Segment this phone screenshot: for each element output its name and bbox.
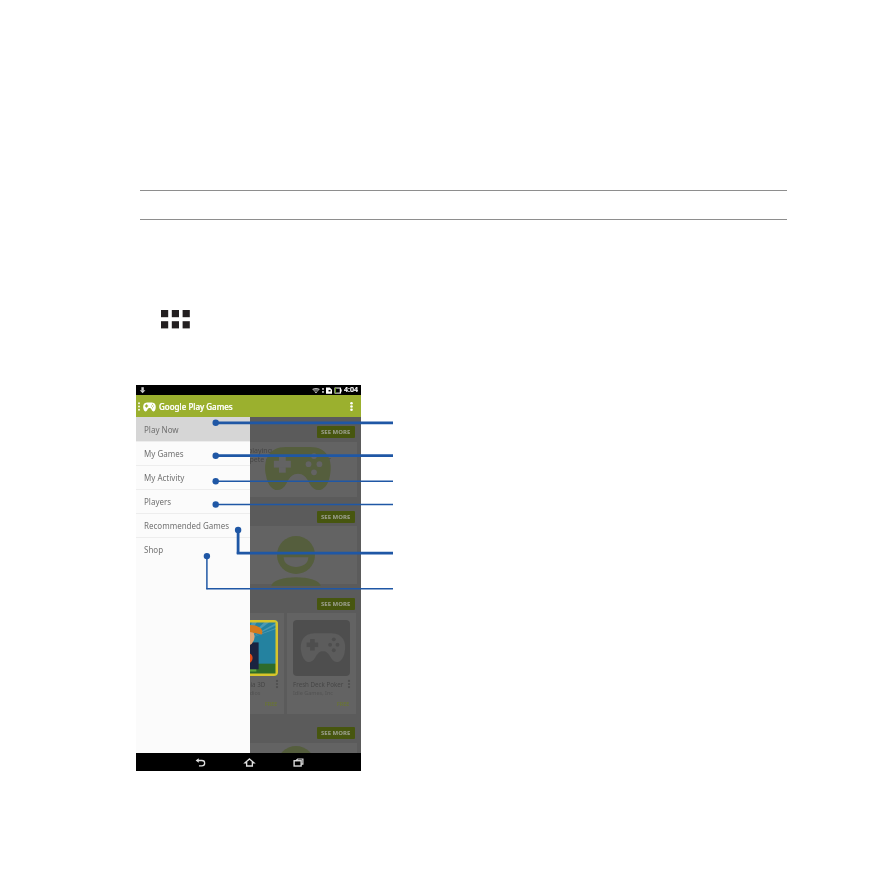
- button[interactable]: Home: [239, 753, 259, 771]
- staticText: Google Play Games: [159, 401, 233, 412]
- button[interactable]: Play Now: [136, 417, 250, 441]
- staticText: Shop: [144, 544, 164, 555]
- staticText: My Games: [144, 448, 184, 459]
- button[interactable]: SEE MORE: [317, 426, 355, 438]
- button[interactable]: Recommended Games: [136, 513, 250, 537]
- staticText: SEE MORE: [321, 600, 351, 608]
- button[interactable]: Shop: [136, 537, 250, 561]
- button[interactable]: SEE MORE: [317, 727, 355, 739]
- button[interactable]: Jewel Mania 3D: [221, 620, 278, 707]
- staticText: FREE: [265, 700, 278, 707]
- staticText: Idle Games, Inc: [293, 689, 333, 696]
- staticText: SEE MORE: [321, 428, 351, 436]
- staticText: You don't have anyone yet. Try: [145, 530, 246, 540]
- button[interactable]: Recents: [288, 753, 308, 771]
- staticText: My Activity: [144, 472, 185, 483]
- button[interactable]: My Games: [136, 441, 250, 465]
- staticText: FREE: [337, 700, 350, 707]
- staticText: 4:04: [344, 385, 358, 395]
- staticText: SEE MORE: [321, 729, 351, 737]
- button[interactable]: Back: [190, 753, 210, 771]
- staticText: Recommended Games: [144, 520, 230, 531]
- staticText: Play Now: [144, 424, 179, 435]
- button[interactable]: My Activity: [136, 465, 250, 489]
- button[interactable]: SEE MORE: [317, 598, 355, 610]
- button[interactable]: Fresh Deck Poker: [293, 620, 350, 707]
- staticText: You have no achievements. Try playing so…: [145, 446, 331, 464]
- staticText: Jewel Mania 3D: [221, 680, 275, 688]
- staticText: SEE MORE: [321, 513, 351, 521]
- button[interactable]: SEE MORE: [317, 511, 355, 523]
- staticText: Players: [144, 496, 172, 507]
- staticText: Fresh Deck Poker: [293, 680, 347, 688]
- button[interactable]: Players: [136, 489, 250, 513]
- staticText: Storm8 Studios: [221, 689, 261, 696]
